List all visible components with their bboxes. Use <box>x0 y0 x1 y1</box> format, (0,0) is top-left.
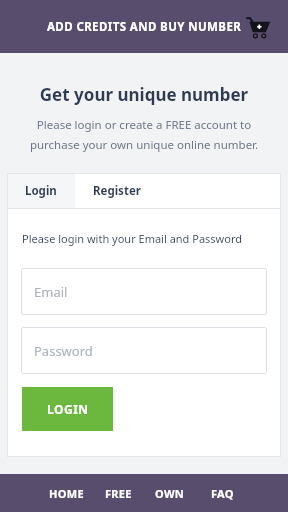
staticText: Please login or create a FREE account to <box>0 117 288 133</box>
button[interactable]: Email <box>21 268 267 315</box>
staticText: OWN <box>155 486 185 501</box>
button[interactable]: Add credits to cart <box>240 9 276 45</box>
button[interactable]: FREE <box>92 474 144 512</box>
button[interactable]: Register <box>75 173 159 208</box>
staticText: Please login with your Email and Passwor… <box>22 231 242 246</box>
staticText: ADD CREDITS AND BUY NUMBER <box>47 19 242 35</box>
button[interactable]: OWN <box>144 474 196 512</box>
button[interactable]: Password <box>21 327 267 374</box>
button[interactable]: FAQ <box>196 474 248 512</box>
button[interactable]: HOME <box>40 474 92 512</box>
staticText: Login <box>25 183 57 199</box>
staticText: Email <box>34 283 68 301</box>
button[interactable]: Login <box>7 173 75 208</box>
staticText: HOME <box>49 486 84 501</box>
staticText: Register <box>93 183 141 199</box>
staticText: Password <box>34 342 93 360</box>
staticText: FAQ <box>211 486 234 501</box>
staticText: Get your unique number <box>0 83 288 106</box>
staticText: purchase your own unique online number. <box>0 137 288 153</box>
button[interactable]: LOGIN <box>22 387 113 431</box>
staticText: LOGIN <box>47 401 89 417</box>
staticText: FREE <box>105 486 132 501</box>
